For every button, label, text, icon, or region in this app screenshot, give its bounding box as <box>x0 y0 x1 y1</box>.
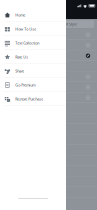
staticText: Go Premium <box>15 82 35 88</box>
button[interactable]: Go Premium <box>0 78 66 92</box>
button[interactable]: Home <box>0 8 66 22</box>
button[interactable]: Share <box>0 64 66 78</box>
button[interactable]: Restore Purchase <box>0 92 66 106</box>
staticText: Rate Us <box>15 54 28 60</box>
button[interactable]: Rate Us <box>0 50 66 64</box>
staticText: Share <box>15 68 24 74</box>
button[interactable]: How To Use <box>0 22 66 36</box>
staticText: Text Collection <box>15 40 39 46</box>
staticText: rt Style <box>66 22 77 27</box>
staticText: How To Use <box>15 26 36 32</box>
button[interactable]: Text Collection <box>0 36 66 50</box>
staticText: Restore Purchase <box>15 96 43 102</box>
staticText: Home <box>15 12 25 18</box>
